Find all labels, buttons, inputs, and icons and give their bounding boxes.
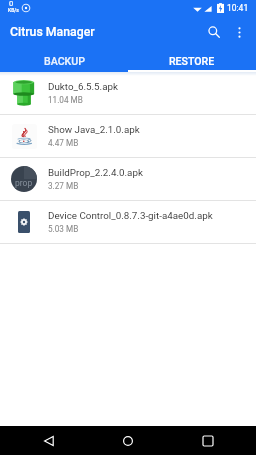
staticText: 3.27 MB (48, 181, 79, 191)
staticText: KB/s (8, 7, 19, 13)
button[interactable]: Home (108, 426, 148, 455)
staticText: 5.03 MB (48, 224, 79, 234)
button[interactable]: BACKUP (0, 48, 128, 72)
staticText: BuildProp_2.2.4.0.apk (48, 167, 143, 178)
button[interactable]: prop (0, 158, 256, 200)
button[interactable]: Dukto_6.5.5.apk (0, 72, 256, 114)
staticText: 4.47 MB (48, 138, 79, 148)
button[interactable]: More options (225, 18, 253, 46)
button[interactable]: Back (29, 426, 69, 455)
staticText: BACKUP (44, 55, 85, 67)
button[interactable]: RESTORE (128, 48, 256, 72)
staticText: Citrus Manager (10, 25, 95, 39)
staticText: RESTORE (169, 55, 215, 67)
button[interactable]: Search (199, 17, 229, 47)
staticText: Dukto_6.5.5.apk (48, 81, 118, 92)
staticText: prop (15, 178, 33, 188)
button[interactable]: Recents (188, 426, 228, 455)
button[interactable]: Show Java_2.1.0.apk (0, 115, 256, 157)
staticText: 11.04 MB (48, 95, 83, 105)
staticText: 10:41 (227, 3, 249, 13)
staticText: Device Control_0.8.7.3-git-a4ae0d.apk (48, 210, 213, 221)
staticText: 0 (9, 0, 14, 8)
staticText: Show Java_2.1.0.apk (48, 124, 140, 135)
button[interactable]: Device Control_0.8.7.3-git-a4ae0d.apk (0, 201, 256, 243)
